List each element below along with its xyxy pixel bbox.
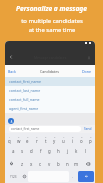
staticText: f [40,148,42,154]
staticText: d [30,148,33,154]
staticText: o [80,138,83,144]
staticText: a [12,148,15,154]
staticText: x [30,161,33,167]
button[interactable]: b [54,157,63,170]
button[interactable]: 7 [59,133,68,145]
staticText: 7 [63,135,65,138]
button[interactable]: 9 [77,133,86,145]
staticText: b [57,161,60,167]
staticText: q [8,138,11,144]
button[interactable]: Enter [78,171,94,182]
staticText: . [72,174,74,179]
button[interactable]: 0 [86,133,95,145]
staticText: 2 [18,135,20,138]
staticText: 9 [81,135,83,138]
button[interactable]: f [36,145,45,157]
button[interactable]: 6 [50,133,59,145]
staticText: n [66,161,69,167]
staticText: r [36,138,38,144]
button[interactable]: j [63,145,72,157]
staticText: contact_last_name [9,88,41,93]
button[interactable]: ?123 [6,171,20,182]
staticText: 5 [45,135,47,138]
button[interactable]: s [18,145,27,157]
staticText: t [45,138,47,144]
staticText: y [53,138,56,144]
staticText: s [21,148,24,154]
staticText: v [48,161,51,167]
staticText: ?123 [10,175,17,179]
staticText: agent_first_name [9,106,39,111]
staticText: 0 [90,135,92,138]
staticText: g [48,148,51,154]
staticText: c [39,161,42,167]
button[interactable]: Done [82,69,92,74]
button[interactable]: g [45,145,54,157]
staticText: Personalize a message [16,4,87,13]
button[interactable]: contact_first_name [9,126,81,132]
staticText: 1 [9,135,11,138]
staticText: j [67,148,69,154]
button[interactable]: Profile [85,54,92,61]
staticText: u [62,138,65,144]
button[interactable]: m [72,157,81,170]
button[interactable]: l [81,145,90,157]
button[interactable]: 4 [32,133,41,145]
button[interactable]: a [9,145,18,157]
staticText: contact_first_name [9,79,41,84]
staticText: 6 [54,135,56,138]
staticText: z [21,161,24,167]
button[interactable]: 5 [41,133,50,145]
staticText: w [17,138,21,144]
button[interactable]: contact_last_name [5,86,95,95]
staticText: e [26,138,29,144]
button[interactable]: k [72,145,81,157]
button[interactable]: Add candidate [8,118,14,124]
staticText: k [75,148,78,154]
button[interactable]: 2 [14,133,23,145]
button[interactable]: Send [84,127,92,131]
button[interactable]: Shift [5,157,18,170]
staticText: 4 [36,135,38,138]
button[interactable]: x [27,157,36,170]
button[interactable]: contact_full_name [5,95,95,104]
button[interactable]: Back [8,69,16,74]
button[interactable]: c [36,157,45,170]
staticText: l [85,148,87,154]
staticText: Candidates [40,69,59,74]
staticText: p [89,138,92,144]
button[interactable]: v [45,157,54,170]
button[interactable]: 1 [5,133,14,145]
button[interactable]: Back [7,53,15,61]
staticText: i [72,138,74,144]
button[interactable]: contact_first_name [5,77,95,86]
staticText: 8 [72,135,74,138]
staticText: h [57,148,60,154]
button[interactable]: h [54,145,63,157]
button[interactable]: agent_first_name [5,104,95,113]
button[interactable]: d [27,145,36,157]
staticText: m [74,161,79,167]
button[interactable]: 8 [68,133,77,145]
staticText: to multiple candidates at the same time [21,17,83,34]
button[interactable]: n [63,157,72,170]
staticText: contact_full_name [9,97,40,102]
staticText: 3 [27,135,29,138]
button[interactable]: Emoji [20,171,28,182]
button[interactable]: Backspace [81,157,95,170]
button[interactable]: 3 [23,133,32,145]
button[interactable]: z [18,157,27,170]
staticText: contact_first_name [11,127,40,131]
